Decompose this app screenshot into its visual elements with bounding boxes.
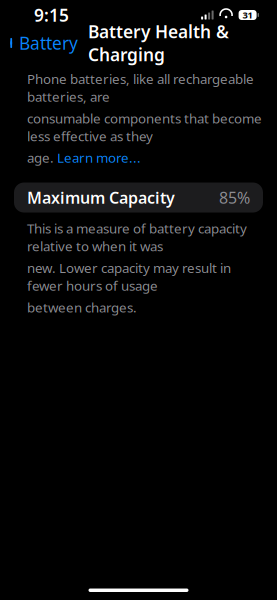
- staticText: 85%: [219, 187, 250, 208]
- staticText: Battery: [19, 31, 78, 54]
- staticText: Learn more...: [57, 149, 141, 166]
- staticText: charging routine so it can wait to finis…: [27, 558, 260, 593]
- staticText: 9:15: [34, 3, 69, 26]
- staticText: This is a measure of battery capacity re…: [27, 219, 247, 255]
- staticText: age.: [27, 149, 54, 166]
- button[interactable]: Battery: [0, 27, 78, 58]
- staticText: Battery Health & Charging: [88, 20, 229, 66]
- button[interactable]: Maximum Capacity: [14, 182, 263, 212]
- staticText: new. Lower capacity may result in fewer …: [27, 259, 231, 294]
- staticText: 31: [243, 9, 253, 21]
- staticText: between charges.: [27, 298, 137, 316]
- staticText: Phone batteries, like all rechargeable b…: [27, 70, 254, 105]
- staticText: consumable components that become less e…: [27, 109, 262, 145]
- staticText: Maximum Capacity: [27, 187, 175, 208]
- button[interactable]: Learn more...: [57, 149, 141, 166]
